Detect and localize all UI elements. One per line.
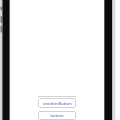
staticText: button <box>50 113 64 118</box>
button[interactable]: button <box>38 111 76 120</box>
button[interactable]: anotherButton <box>38 98 76 108</box>
staticText: anotherButton <box>43 101 72 106</box>
